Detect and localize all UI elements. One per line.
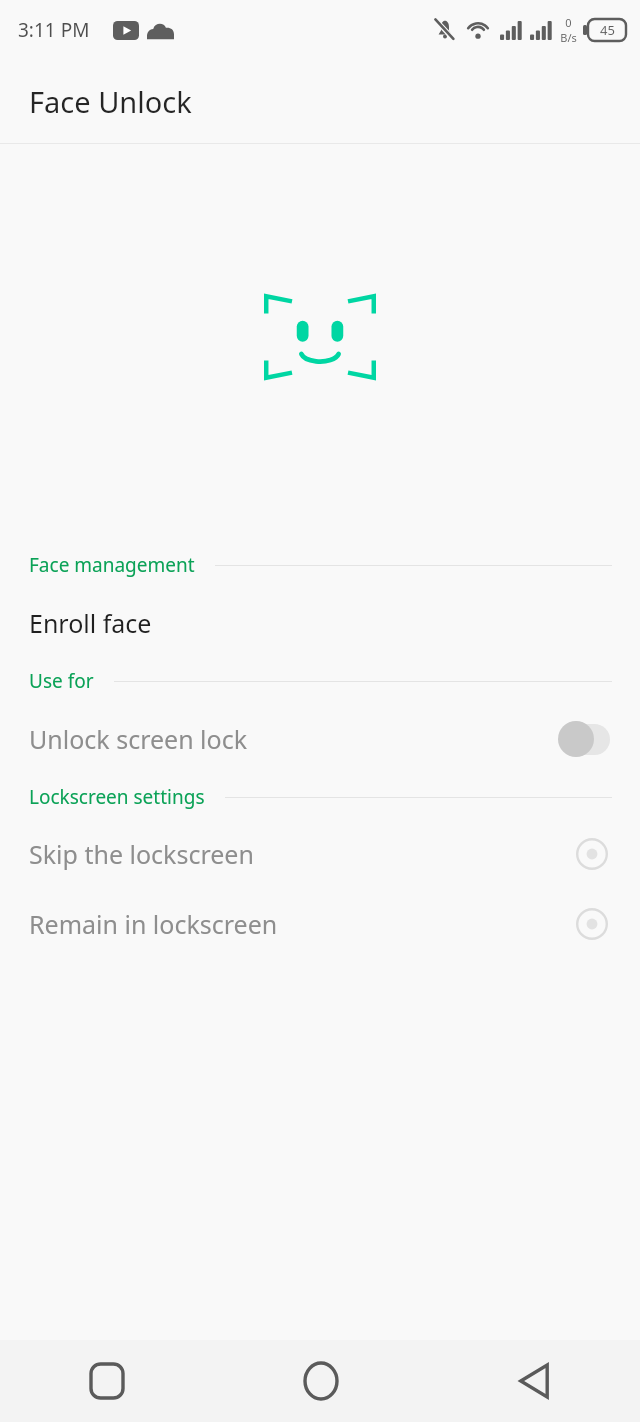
staticText: Enroll face (29, 606, 152, 640)
staticText: Face management (29, 552, 195, 578)
button[interactable]: Unlock screen lock (0, 703, 640, 775)
button[interactable]: Remain in lockscreen (0, 889, 640, 959)
button[interactable]: Skip the lockscreen (0, 819, 640, 889)
button[interactable]: Enroll face (0, 587, 640, 659)
staticText: Skip the lockscreen (29, 837, 254, 871)
staticText: 3:11 PM (18, 17, 90, 43)
button[interactable]: Radio option (574, 836, 610, 872)
button[interactable]: Home (214, 1340, 427, 1422)
button[interactable]: Back (427, 1340, 640, 1422)
staticText: Remain in lockscreen (29, 907, 278, 941)
button[interactable]: Unlock screen lock toggle (558, 721, 610, 757)
button[interactable]: Recents (0, 1340, 214, 1422)
staticText: Use for (29, 668, 94, 694)
staticText: Face Unlock (29, 82, 192, 121)
staticText: Lockscreen settings (29, 784, 205, 810)
button[interactable]: Radio option (574, 906, 610, 942)
staticText: Unlock screen lock (29, 722, 248, 756)
staticText: B/s (560, 30, 577, 45)
staticText: 0 (565, 15, 572, 30)
staticText: 45 (600, 21, 615, 39)
